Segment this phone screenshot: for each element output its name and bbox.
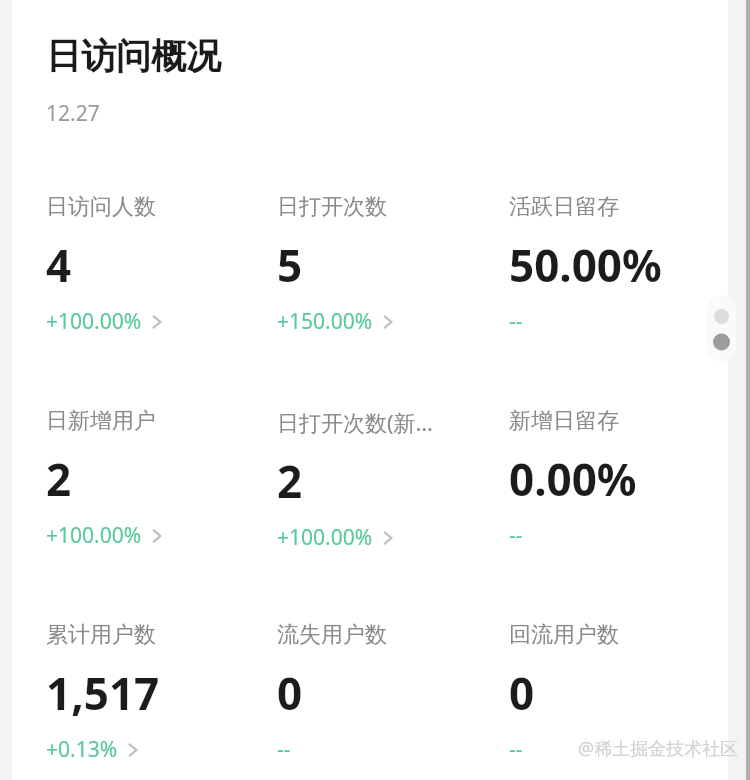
button[interactable]: 日访问人数: [46, 193, 271, 363]
staticText: +100.00%: [46, 521, 142, 550]
staticText: --: [509, 307, 523, 336]
staticText: --: [277, 735, 291, 764]
staticText: +100.00%: [277, 523, 373, 552]
button[interactable]: 回流用户数: [509, 621, 734, 780]
staticText: 日打开次数(新…: [277, 407, 434, 437]
staticText: 回流用户数: [509, 621, 619, 649]
staticText: 流失用户数: [277, 621, 387, 649]
staticText: 12.27: [46, 99, 100, 128]
staticText: 新增日留存: [509, 407, 619, 435]
button[interactable]: Scroll indicator: [707, 295, 736, 362]
staticText: +0.13%: [46, 735, 118, 764]
staticText: --: [509, 735, 523, 764]
staticText: 日打开次数: [277, 193, 387, 221]
button[interactable]: 活跃日留存: [509, 193, 734, 363]
staticText: --: [509, 521, 523, 550]
button[interactable]: 累计用户数: [46, 621, 271, 780]
staticText: 活跃日留存: [509, 193, 619, 221]
staticText: 2: [46, 449, 72, 509]
staticText: 0.00%: [509, 449, 637, 509]
button[interactable]: 日打开次数: [277, 193, 502, 363]
staticText: +150.00%: [277, 307, 373, 336]
staticText: 日访问概况: [46, 34, 221, 78]
staticText: 0: [509, 663, 535, 723]
button[interactable]: 日新增用户: [46, 407, 271, 577]
button[interactable]: 日打开次数(新…: [277, 407, 502, 577]
button[interactable]: 流失用户数: [277, 621, 502, 780]
staticText: 日访问人数: [46, 193, 156, 221]
staticText: 0: [277, 663, 303, 723]
staticText: 1,517: [46, 663, 160, 723]
staticText: 4: [46, 235, 72, 295]
staticText: 日新增用户: [46, 407, 156, 435]
staticText: +100.00%: [46, 307, 142, 336]
staticText: 50.00%: [509, 235, 662, 295]
staticText: 累计用户数: [46, 621, 156, 649]
staticText: @稀土掘金技术社区: [578, 736, 739, 761]
staticText: 2: [277, 451, 303, 511]
staticText: 5: [277, 235, 303, 295]
button[interactable]: 新增日留存: [509, 407, 734, 577]
